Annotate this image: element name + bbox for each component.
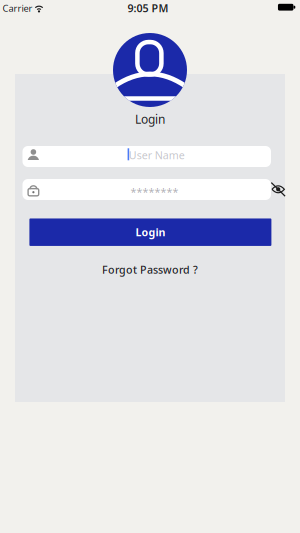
button[interactable]: User Name <box>22 146 271 167</box>
button[interactable]: ******** <box>22 179 271 200</box>
staticText: User Name <box>129 148 185 162</box>
button[interactable]: Forgot Password ? <box>102 262 198 277</box>
staticText: Carrier <box>2 2 32 14</box>
staticText: 9:05 PM <box>127 1 168 15</box>
button[interactable]: Login <box>29 218 271 246</box>
staticText: Login <box>135 225 165 239</box>
button[interactable]: Show password <box>271 182 286 197</box>
staticText: Forgot Password ? <box>102 262 198 277</box>
staticText: ******** <box>130 185 178 199</box>
staticText: Login <box>135 111 165 127</box>
